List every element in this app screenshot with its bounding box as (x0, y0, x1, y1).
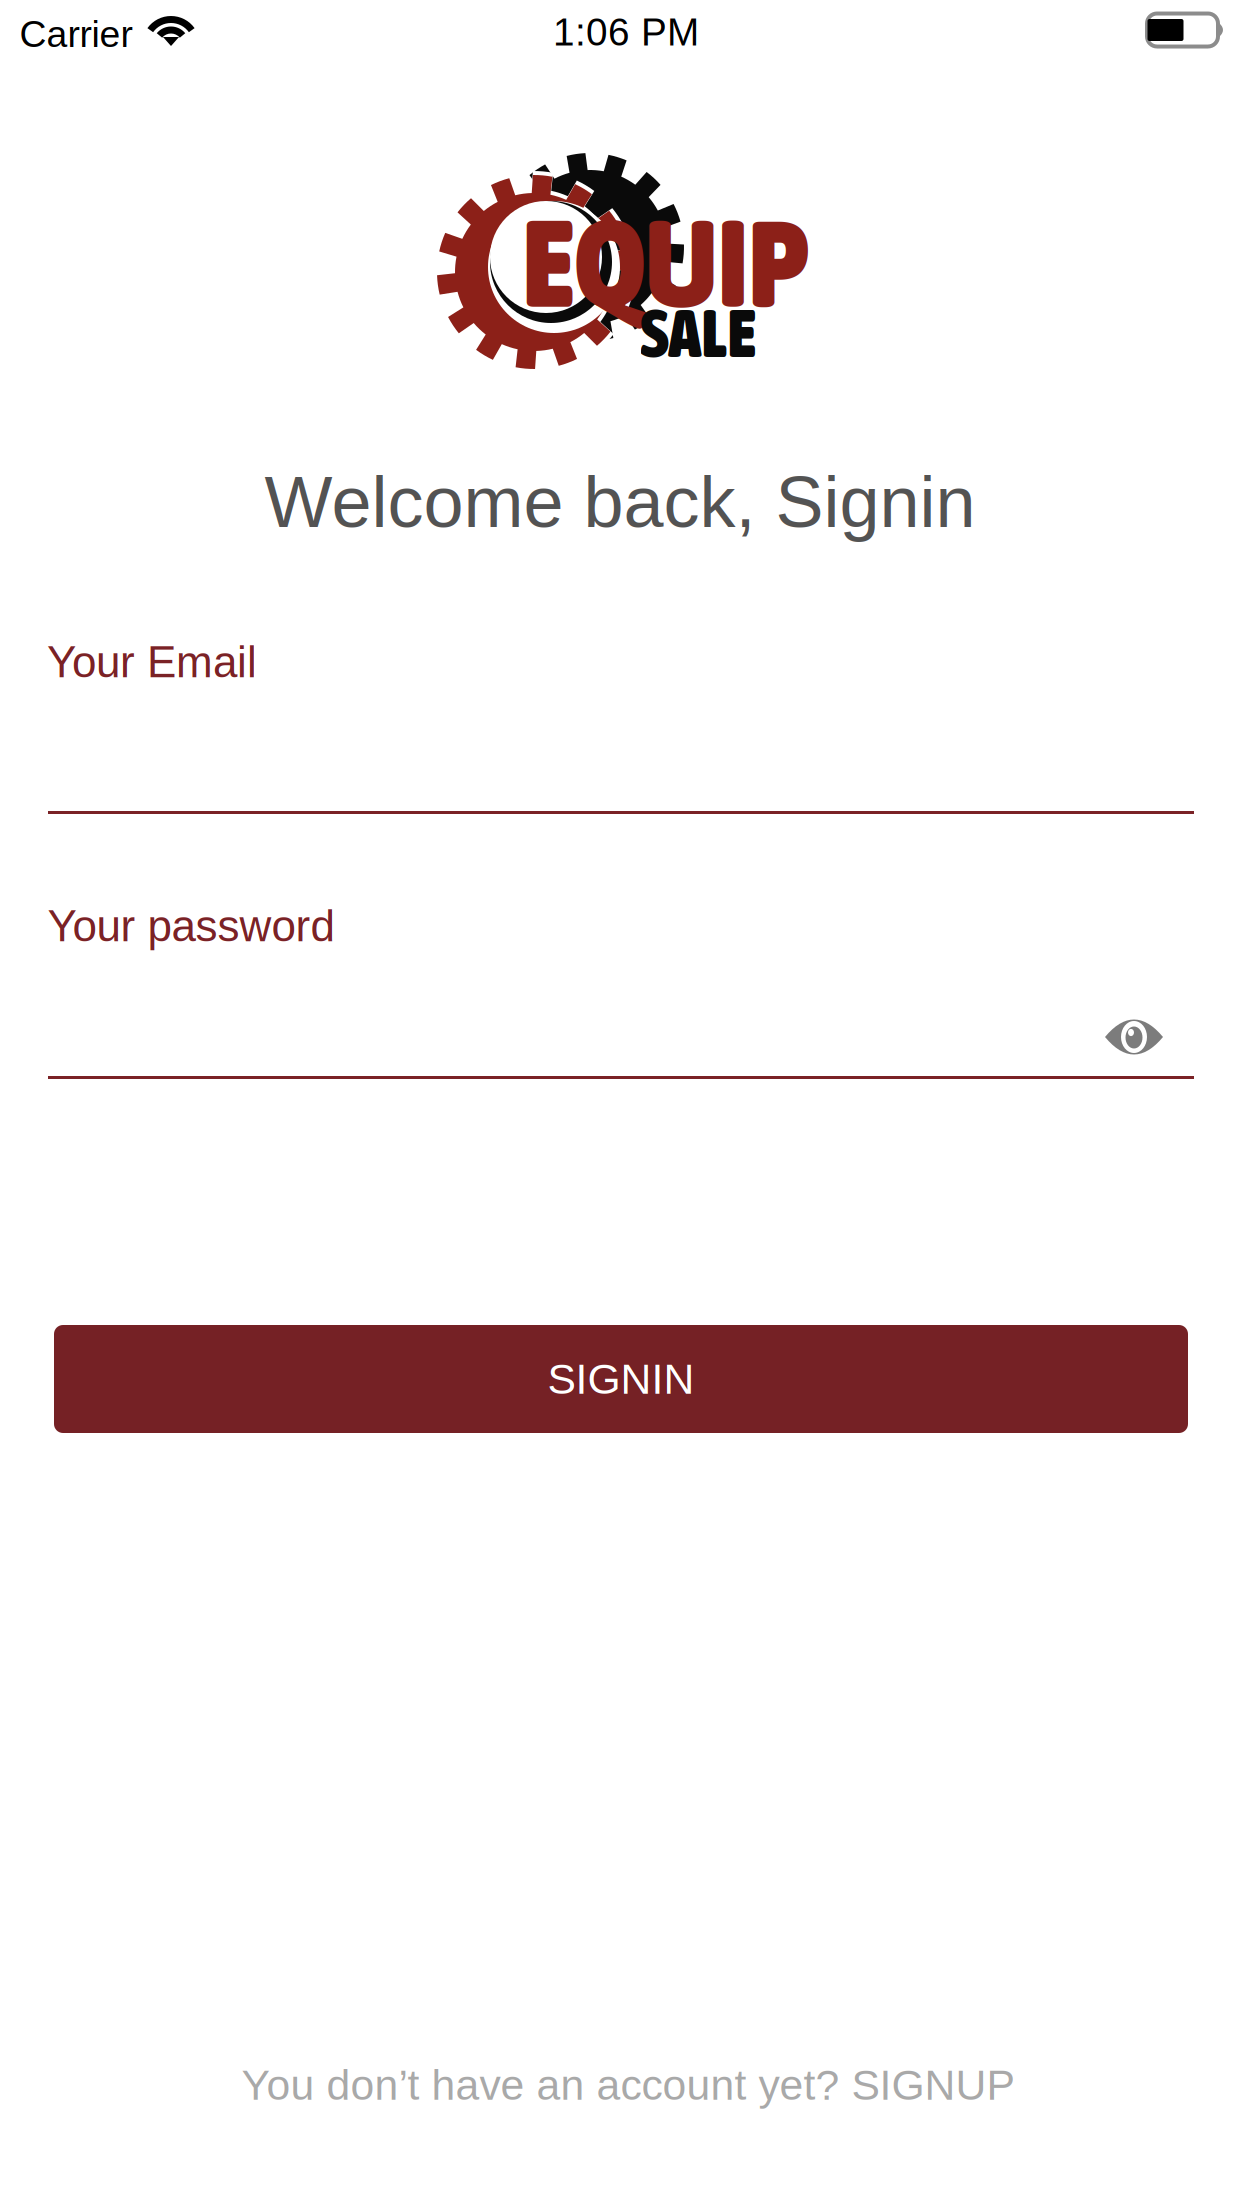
button[interactable]: You don’t have an account yet? SIGNUP (225, 2051, 1030, 2119)
button[interactable]: Show password (1086, 999, 1182, 1075)
staticText: SALE (640, 295, 755, 371)
staticText: Carrier (19, 13, 132, 55)
button[interactable]: SIGNIN (54, 1325, 1188, 1433)
staticText: SIGNIN (547, 1355, 694, 1403)
staticText: 1:06 PM (553, 10, 699, 54)
staticText: You don’t have an account yet? SIGNUP (241, 2061, 1014, 2109)
button[interactable]: Your Email (48, 648, 1194, 828)
staticText: Your password (47, 901, 334, 951)
button[interactable]: Your password (48, 902, 1194, 1098)
staticText: EQUIP (522, 193, 807, 332)
staticText: Your Email (47, 637, 257, 687)
staticText: Welcome back, Signin (264, 462, 975, 542)
